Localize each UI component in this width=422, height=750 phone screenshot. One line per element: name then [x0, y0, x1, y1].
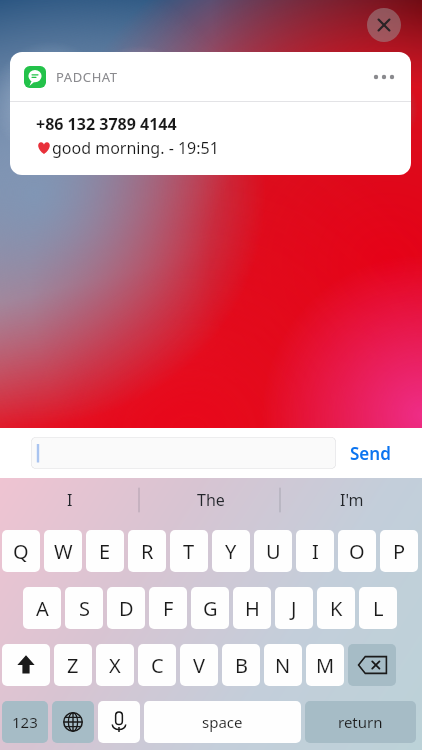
staticText: E	[99, 538, 111, 565]
staticText: F	[163, 595, 174, 622]
button[interactable]: K	[317, 587, 355, 629]
staticText: L	[373, 595, 384, 622]
button[interactable]: C	[138, 644, 176, 686]
button[interactable]: B	[222, 644, 260, 686]
staticText: C	[151, 652, 164, 679]
staticText: M	[316, 652, 335, 679]
staticText: K	[330, 595, 343, 622]
staticText: Z	[67, 652, 79, 679]
staticText: R	[141, 538, 154, 565]
button[interactable]: J	[275, 587, 313, 629]
staticText: good morning. - 19:51	[52, 137, 219, 159]
button[interactable]: L	[359, 587, 397, 629]
staticText: W	[54, 538, 73, 565]
staticText: Y	[225, 538, 237, 565]
staticText: +86 132 3789 4144	[36, 113, 177, 135]
staticText: G	[203, 595, 218, 622]
button[interactable]: U	[254, 530, 292, 572]
staticText: Q	[13, 538, 29, 565]
button[interactable]: Y	[212, 530, 250, 572]
staticText: return	[338, 712, 383, 732]
button[interactable]: A	[23, 587, 61, 629]
staticText: I	[312, 538, 319, 565]
button[interactable]: 123	[2, 701, 48, 743]
button[interactable]: T	[170, 530, 208, 572]
button[interactable]: PADCHAT	[10, 52, 411, 175]
button[interactable]: return	[305, 701, 416, 743]
button[interactable]: Backspace	[348, 644, 396, 686]
button[interactable]: The	[140, 478, 281, 522]
staticText: A	[36, 595, 49, 622]
button[interactable]: E	[86, 530, 124, 572]
button[interactable]: R	[128, 530, 166, 572]
button[interactable]: Send	[350, 435, 391, 471]
button[interactable]: Q	[2, 530, 40, 572]
staticText: B	[235, 652, 248, 679]
staticText: H	[245, 595, 260, 622]
button[interactable]: V	[180, 644, 218, 686]
button[interactable]: More options	[371, 67, 397, 87]
button[interactable]: W	[44, 530, 82, 572]
button[interactable]: P	[380, 530, 418, 572]
staticText: P	[393, 538, 406, 565]
button[interactable]: Shift	[2, 644, 50, 686]
button[interactable]: Close	[367, 8, 401, 42]
staticText: I'm	[340, 489, 364, 511]
staticText: U	[266, 538, 281, 565]
button[interactable]: D	[107, 587, 145, 629]
button[interactable]: S	[65, 587, 103, 629]
button[interactable]: space	[144, 701, 301, 743]
staticText: V	[193, 652, 205, 679]
staticText: D	[119, 595, 134, 622]
button[interactable]: O	[338, 530, 376, 572]
staticText: 123	[12, 712, 38, 732]
staticText: J	[291, 595, 297, 622]
button[interactable]: H	[233, 587, 271, 629]
button[interactable]: Switch keyboard	[52, 701, 94, 743]
staticText: X	[109, 652, 121, 679]
button[interactable]: F	[149, 587, 187, 629]
staticText: PADCHAT	[56, 68, 118, 86]
staticText: I	[67, 489, 73, 511]
button[interactable]: Dictate	[98, 701, 140, 743]
button[interactable]	[31, 437, 336, 469]
button[interactable]: M	[306, 644, 344, 686]
staticText: O	[349, 538, 365, 565]
button[interactable]: X	[96, 644, 134, 686]
staticText: Send	[350, 442, 391, 465]
button[interactable]: I	[0, 478, 140, 522]
button[interactable]: I'm	[281, 478, 422, 522]
staticText: T	[183, 538, 195, 565]
button[interactable]: I	[296, 530, 334, 572]
button[interactable]: N	[264, 644, 302, 686]
button[interactable]: G	[191, 587, 229, 629]
staticText: N	[275, 652, 291, 679]
button[interactable]: Z	[54, 644, 92, 686]
staticText: S	[79, 595, 90, 622]
staticText: The	[197, 489, 225, 511]
staticText: space	[202, 712, 243, 732]
